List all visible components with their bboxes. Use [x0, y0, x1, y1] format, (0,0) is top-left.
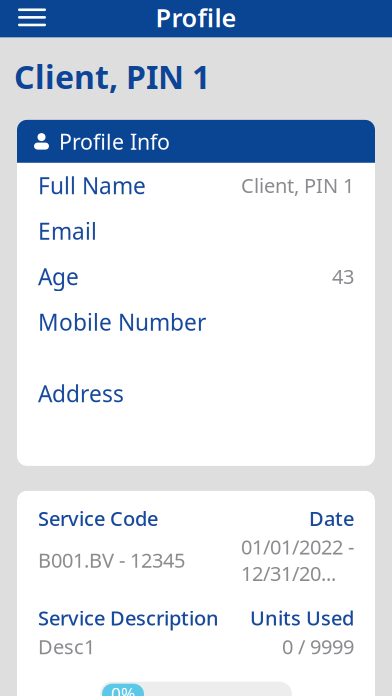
- staticText: Profile Info: [59, 127, 170, 155]
- staticText: 0%: [111, 683, 135, 696]
- staticText: Client, PIN 1: [241, 172, 354, 199]
- staticText: Service Description: [38, 604, 219, 631]
- staticText: Full Name: [38, 170, 146, 200]
- button[interactable]: Menu: [10, 0, 54, 37]
- staticText: Address: [38, 378, 124, 408]
- staticText: Client, PIN 1: [14, 55, 210, 98]
- staticText: 01/01/2022 - 12/31/20...: [241, 533, 354, 586]
- staticText: Desc1: [38, 633, 95, 660]
- staticText: Units Used: [250, 604, 354, 631]
- staticText: Profile: [155, 0, 236, 34]
- staticText: Date: [309, 505, 354, 531]
- staticText: Mobile Number: [38, 307, 206, 337]
- staticText: 43: [332, 263, 354, 290]
- staticText: Email: [38, 216, 97, 246]
- staticText: Service Code: [38, 505, 158, 531]
- staticText: Age: [38, 261, 79, 291]
- staticText: B001.BV - 12345: [38, 547, 185, 573]
- staticText: 0 / 9999: [282, 633, 354, 660]
